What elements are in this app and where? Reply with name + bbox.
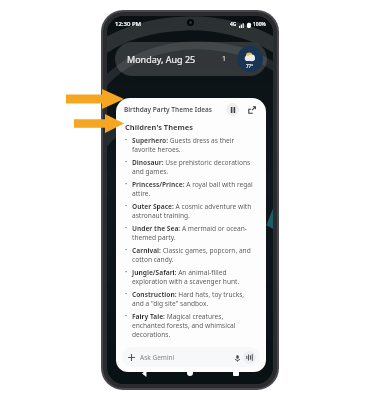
staticText: Under the Sea: A mermaid or ocean-themed… — [132, 224, 257, 242]
staticText: 100% — [253, 21, 266, 28]
staticText: • — [125, 312, 132, 320]
staticText: 12:30 PM — [115, 20, 142, 28]
staticText: • — [125, 180, 132, 188]
staticText: Fairy Tale: Magical creatures, enchanted… — [132, 312, 257, 338]
staticText: Jungle/Safari: An animal-filled explorat… — [132, 268, 257, 286]
staticText: Construction: Hard hats, toy trucks, and… — [132, 290, 257, 308]
button[interactable]: Weather — [237, 46, 263, 72]
button[interactable]: Monday, Aug 25 — [115, 42, 267, 76]
staticText: Ask Gemini — [140, 353, 175, 362]
button[interactable]: Pause — [226, 103, 239, 116]
button[interactable]: Home — [181, 364, 199, 382]
staticText: • — [125, 136, 132, 144]
button[interactable]: Back — [135, 364, 153, 382]
staticText: Monday, Aug 25 — [127, 53, 196, 65]
staticText: 4G — [230, 21, 237, 28]
staticText: • — [125, 202, 132, 210]
staticText: • — [125, 290, 132, 298]
staticText: 1 — [222, 54, 227, 64]
staticText: Carnival: Classic games, popcorn, and co… — [132, 246, 257, 264]
staticText: • — [125, 224, 132, 232]
staticText: Children's Themes — [125, 122, 194, 132]
staticText: Superhero: Guests dress as their favorit… — [132, 136, 257, 154]
staticText: Birthday Party Theme Ideas — [124, 105, 226, 114]
staticText: 77° — [246, 63, 254, 69]
staticText: • — [125, 246, 132, 254]
staticText: Dinosaur: Use prehistoric decorations an… — [132, 158, 257, 176]
staticText: • — [125, 158, 132, 166]
button[interactable]: Recents — [227, 364, 245, 382]
button[interactable]: Ask Gemini — [122, 347, 260, 367]
staticText: • — [125, 268, 132, 276]
button[interactable]: Microphone — [231, 352, 243, 364]
button[interactable]: Expand — [245, 103, 258, 116]
button[interactable]: Voice — [243, 351, 256, 364]
staticText: Princess/Prince: A royal ball with regal… — [132, 180, 257, 198]
staticText: Outer Space: A cosmic adventure with ast… — [132, 202, 257, 220]
